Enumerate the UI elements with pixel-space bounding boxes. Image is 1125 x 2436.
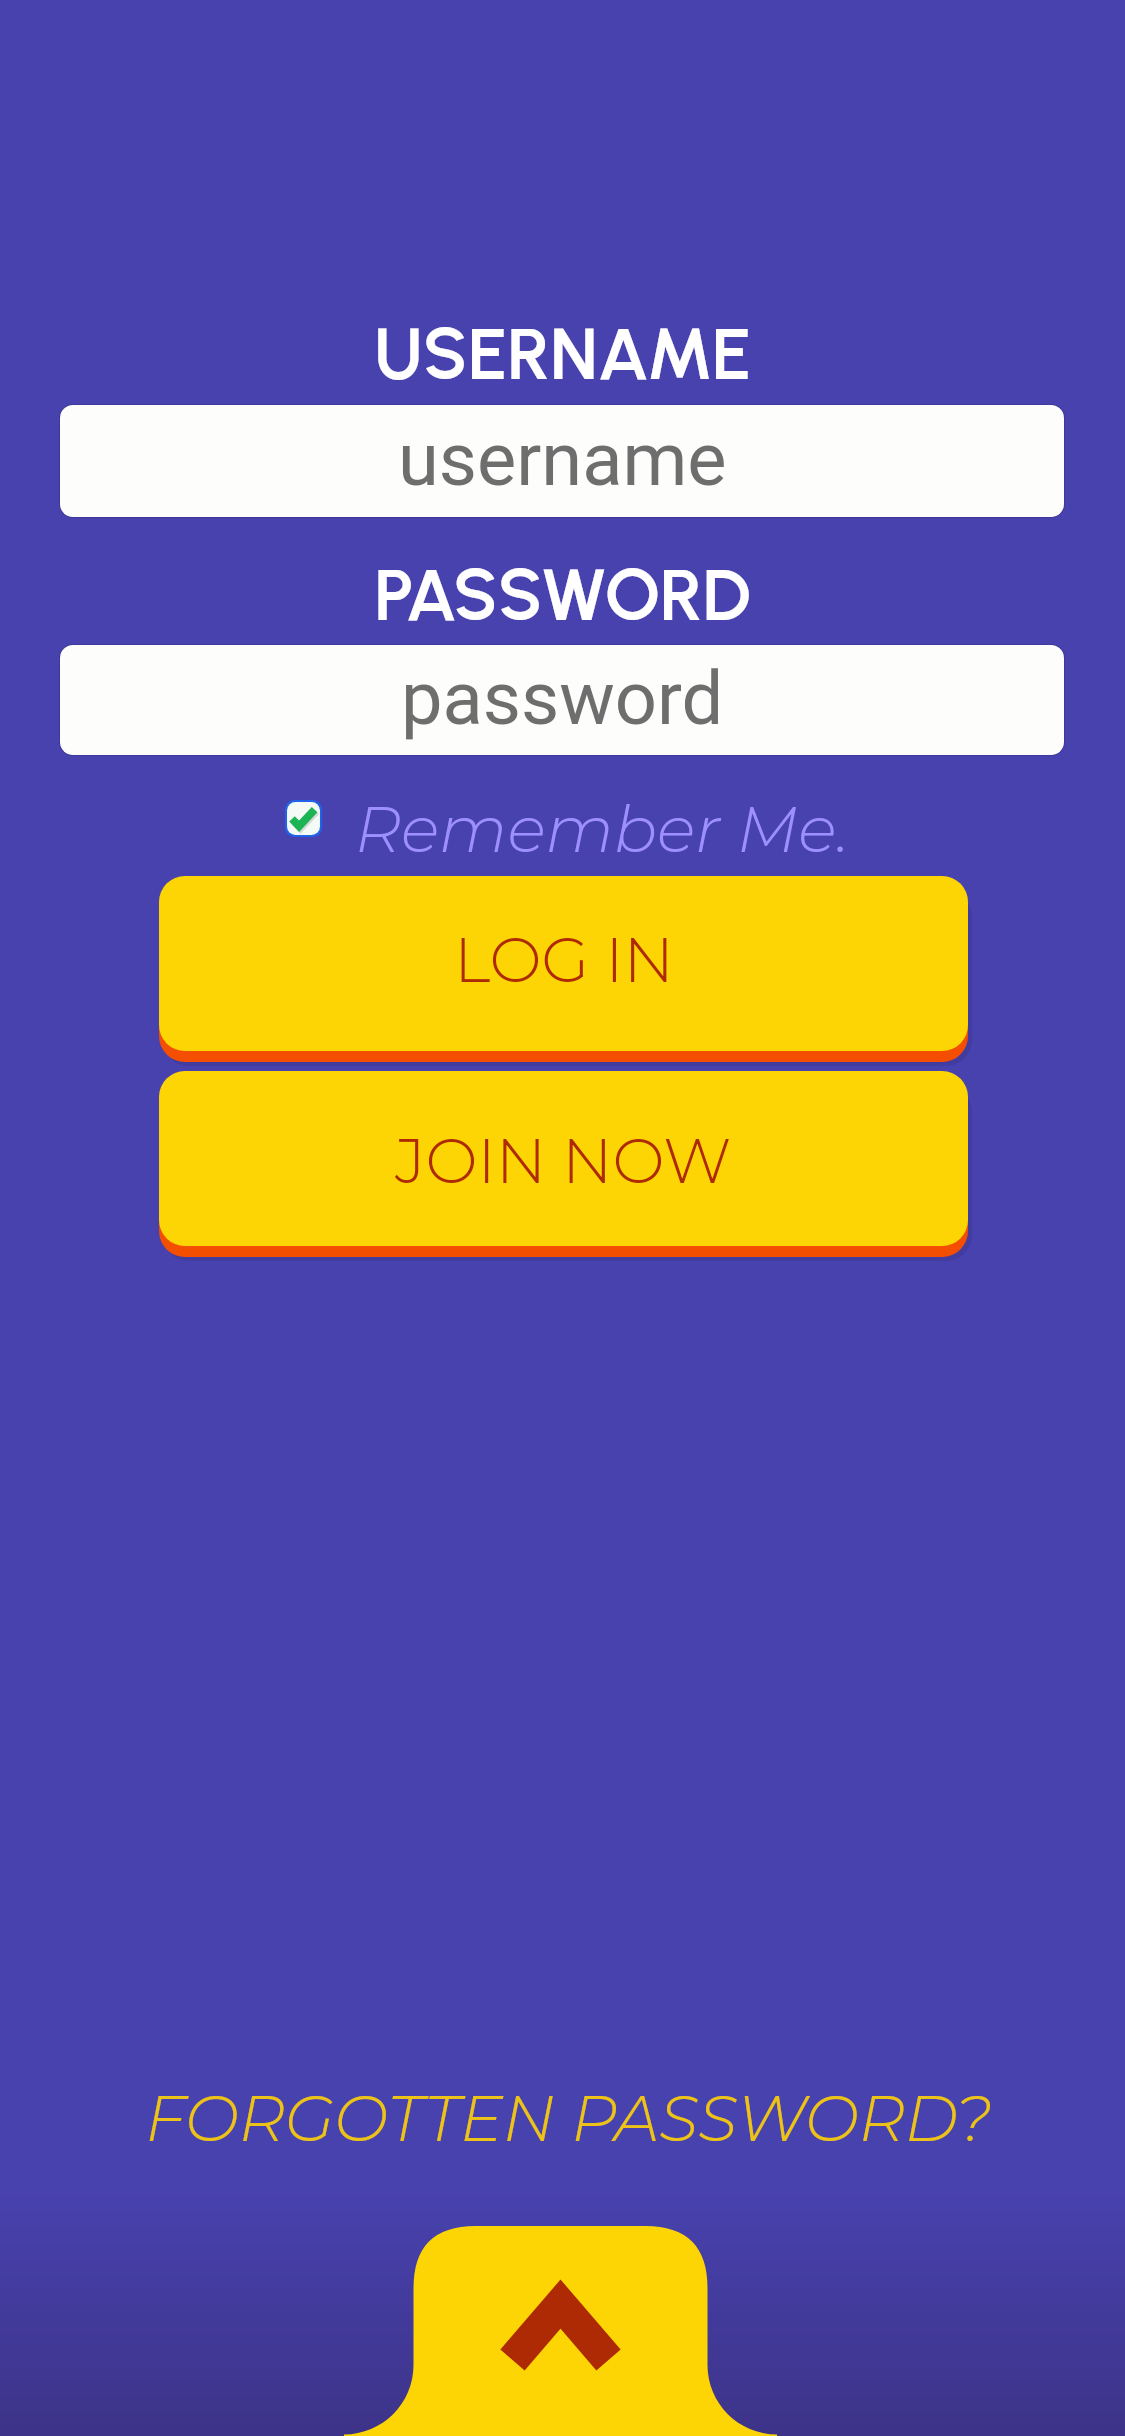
staticText: password — [401, 655, 724, 742]
button[interactable]: username — [60, 405, 1064, 517]
button[interactable]: JOIN NOW — [159, 1071, 968, 1261]
button[interactable]: Expand panel — [344, 2226, 777, 2436]
button[interactable]: LOG IN — [159, 876, 968, 1066]
staticText: USERNAME — [0, 311, 1125, 397]
staticText: Remember Me. — [355, 790, 850, 852]
staticText: PASSWORD — [0, 552, 1125, 638]
staticText: LOG IN — [454, 922, 674, 998]
staticText: username — [398, 416, 727, 503]
button[interactable]: FORGOTTEN PASSWORD? — [6, 2079, 1125, 2157]
button[interactable]: Remember Me. — [272, 790, 850, 852]
button[interactable]: password — [60, 645, 1064, 755]
staticText: JOIN NOW — [395, 1123, 732, 1199]
